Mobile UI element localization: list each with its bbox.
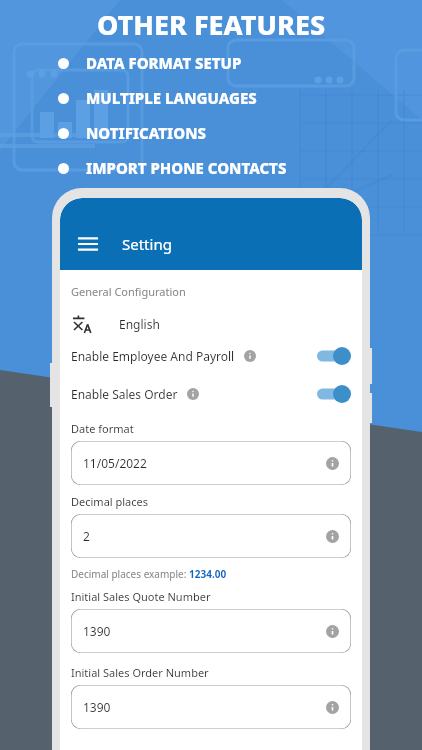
button[interactable]: Open navigation menu [74, 230, 102, 258]
button[interactable]: 11/05/2022 [71, 441, 351, 485]
staticText: 1390 [83, 699, 111, 715]
staticText: 11/05/2022 [83, 455, 147, 471]
staticText: Date format [71, 421, 134, 436]
button[interactable]: 2 [71, 514, 351, 558]
button[interactable]: English [71, 313, 351, 335]
staticText: Enable Sales Order [71, 386, 178, 402]
button[interactable]: Enable Employee And Payroll [71, 347, 351, 365]
staticText: OTHER FEATURES [0, 6, 422, 43]
staticText: Setting [122, 234, 172, 254]
staticText: Decimal places [71, 494, 149, 509]
staticText: MULTIPLE LANGUAGES [86, 88, 257, 108]
staticText: NOTIFICATIONS [86, 123, 207, 143]
button[interactable]: Enable Sales Order [71, 385, 351, 403]
staticText: Initial Sales Order Number [71, 665, 209, 680]
staticText: 1390 [83, 623, 111, 639]
staticText: IMPORT PHONE CONTACTS [86, 158, 287, 178]
staticText: 1234.00 [189, 567, 227, 581]
button[interactable]: 1390 [71, 685, 351, 729]
staticText: DATA FORMAT SETUP [86, 53, 242, 73]
staticText: Enable Employee And Payroll [71, 348, 235, 364]
staticText: English [119, 316, 160, 332]
staticText: Decimal places example: [71, 567, 189, 581]
staticText: General Configuration [71, 284, 186, 299]
staticText: 2 [83, 528, 90, 544]
button[interactable]: 1390 [71, 609, 351, 653]
staticText: Initial Sales Quote Number [71, 589, 211, 604]
